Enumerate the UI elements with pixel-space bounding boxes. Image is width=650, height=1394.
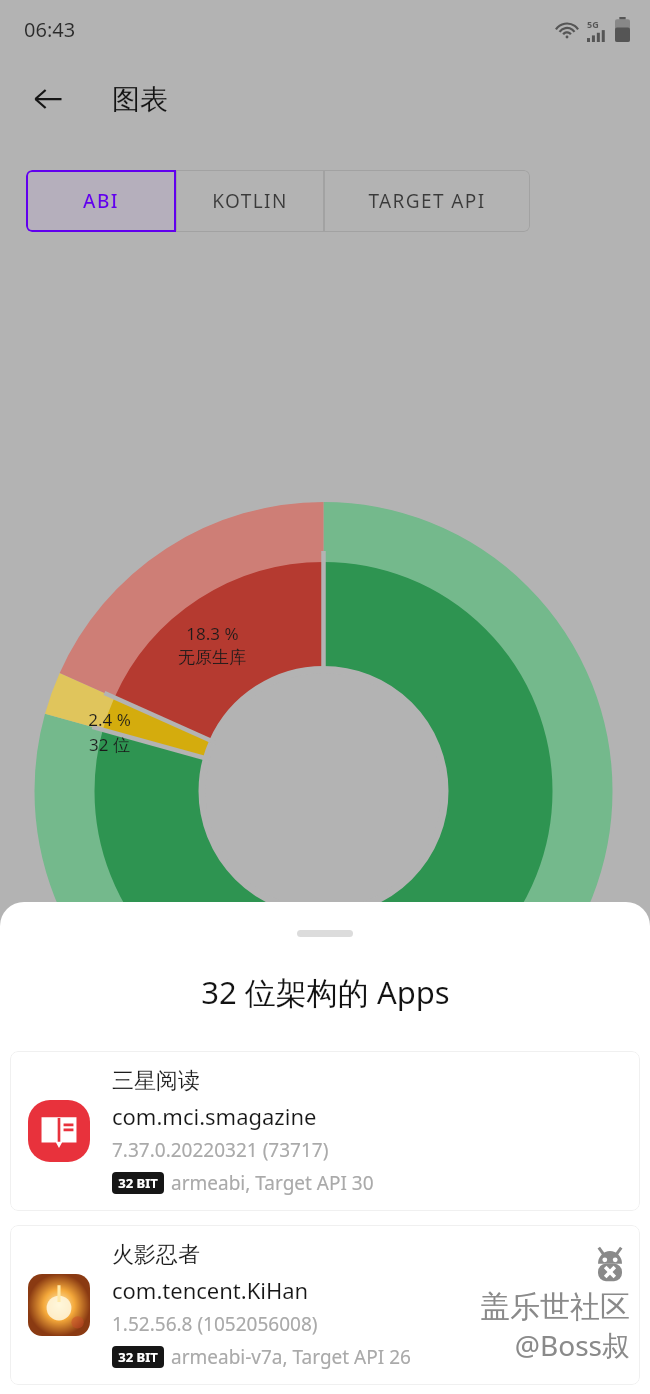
staticText: 7.37.0.20220321 (73717): [112, 1137, 329, 1163]
button[interactable]: KOTLIN: [176, 170, 324, 232]
staticText: 06:43: [24, 16, 76, 43]
button[interactable]: ABI: [26, 170, 176, 232]
staticText: com.mci.smagazine: [112, 1101, 317, 1131]
staticText: 1.52.56.8 (1052056008): [112, 1311, 318, 1337]
staticText: ABI: [83, 188, 119, 214]
staticText: 盖乐世社区: [480, 1288, 630, 1326]
staticText: com.tencent.KiHan: [112, 1275, 309, 1305]
staticText: armeabi-v7a, Target API 26: [171, 1344, 411, 1370]
staticText: 18.3 %: [186, 622, 239, 645]
staticText: @Boss叔: [514, 1326, 630, 1364]
button[interactable]: Back: [22, 73, 74, 125]
staticText: 32 BIT: [118, 1348, 158, 1366]
staticText: 无原生库: [178, 647, 246, 668]
staticText: 2.4 %: [88, 708, 131, 731]
button[interactable]: TARGET API: [324, 170, 530, 232]
button[interactable]: 盖乐世社区: [10, 1225, 640, 1385]
staticText: 32 位: [89, 733, 130, 756]
staticText: 火影忍者: [112, 1241, 200, 1269]
staticText: KOTLIN: [212, 188, 288, 214]
staticText: 5G: [587, 18, 599, 30]
staticText: 图表: [112, 82, 168, 117]
staticText: 三星阅读: [112, 1067, 200, 1095]
staticText: 32 位架构的 Apps: [201, 971, 450, 1013]
button[interactable]: 三星阅读: [10, 1051, 640, 1211]
staticText: armeabi, Target API 30: [171, 1170, 374, 1196]
staticText: 32 BIT: [118, 1174, 158, 1192]
staticText: TARGET API: [368, 188, 486, 214]
